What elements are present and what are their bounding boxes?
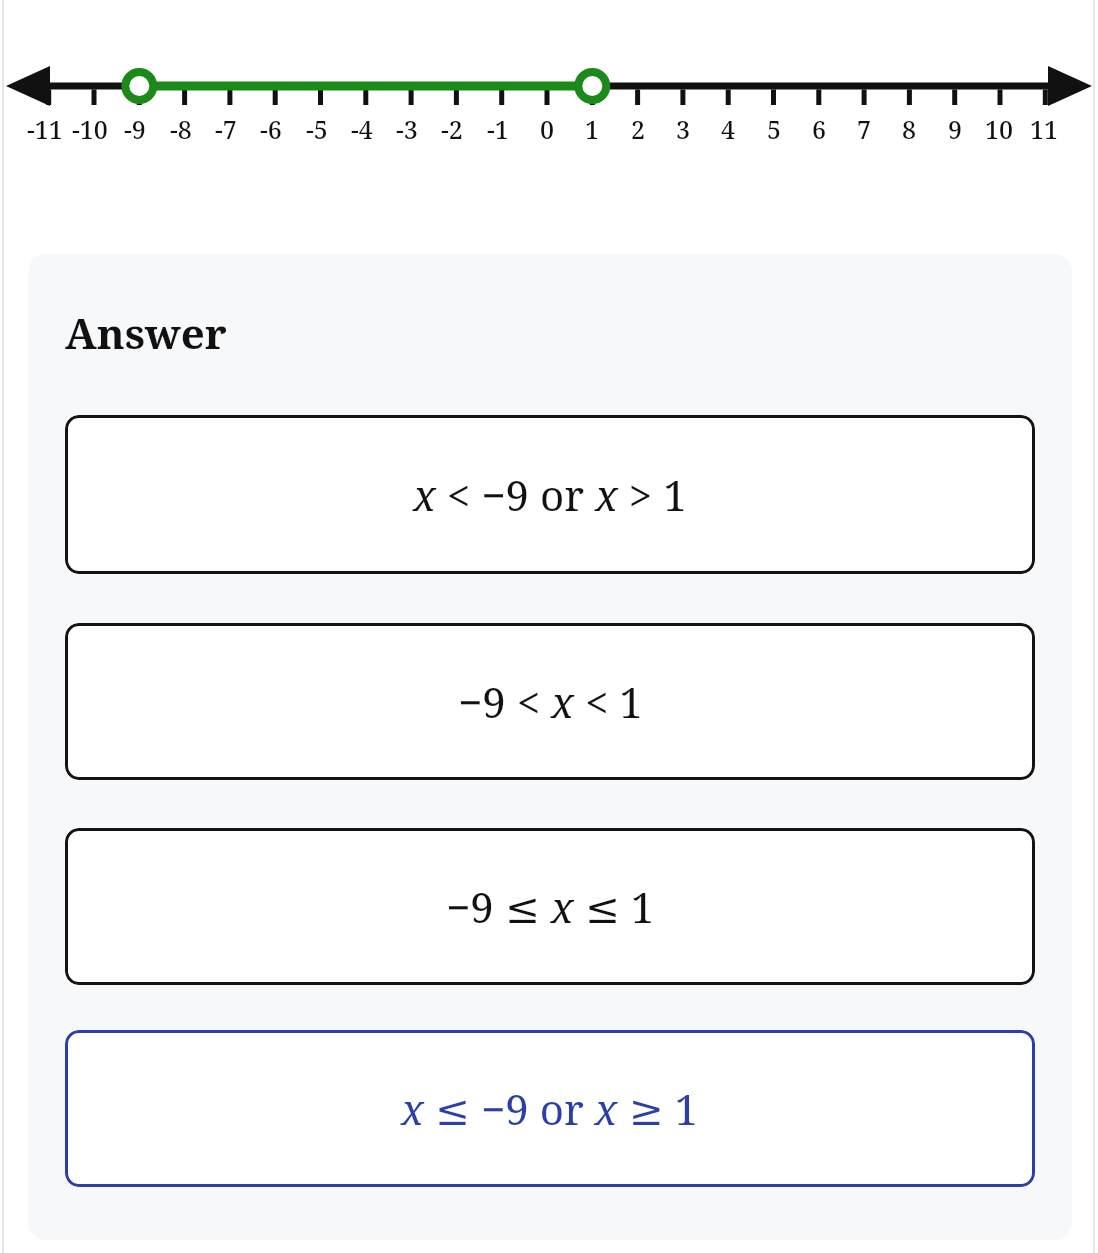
staticText: -2 bbox=[441, 112, 463, 146]
staticText: 7 bbox=[857, 112, 872, 146]
button[interactable]: x < −9 or x > 1 bbox=[65, 415, 1035, 574]
staticText: x < −9 or x > 1 bbox=[413, 466, 687, 523]
staticText: -9 bbox=[124, 112, 146, 146]
staticText: 2 bbox=[631, 112, 646, 146]
staticText: 0 bbox=[540, 112, 555, 146]
staticText: 8 bbox=[902, 112, 917, 146]
staticText: 10 bbox=[985, 112, 1014, 146]
button[interactable]: −9 < x < 1 bbox=[65, 623, 1035, 780]
staticText: 6 bbox=[812, 112, 827, 146]
staticText: −9 ≤ x ≤ 1 bbox=[446, 878, 655, 935]
staticText: -6 bbox=[260, 112, 282, 146]
staticText: -4 bbox=[351, 112, 373, 146]
staticText: -1 bbox=[487, 112, 509, 146]
staticText: −9 < x < 1 bbox=[458, 673, 643, 730]
staticText: 4 bbox=[721, 112, 736, 146]
staticText: -8 bbox=[170, 112, 192, 146]
staticText: 11 bbox=[1030, 112, 1059, 146]
staticText: -7 bbox=[215, 112, 237, 146]
staticText: x ≤ −9 or x ≥ 1 bbox=[401, 1080, 699, 1137]
staticText: -3 bbox=[396, 112, 418, 146]
button[interactable]: x ≤ −9 or x ≥ 1 bbox=[65, 1030, 1035, 1187]
staticText: 1 bbox=[585, 112, 600, 146]
staticText: -10 bbox=[72, 112, 108, 146]
staticText: -11 bbox=[27, 112, 63, 146]
staticText: 5 bbox=[767, 112, 782, 146]
staticText: Answer bbox=[65, 304, 227, 361]
staticText: 9 bbox=[948, 112, 963, 146]
staticText: 3 bbox=[676, 112, 691, 146]
button[interactable]: −9 ≤ x ≤ 1 bbox=[65, 828, 1035, 985]
staticText: -5 bbox=[306, 112, 328, 146]
